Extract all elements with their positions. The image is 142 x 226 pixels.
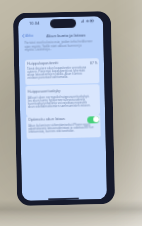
button[interactable]	[26, 114, 101, 139]
staticText: Huippukapasiteetti	[27, 60, 59, 66]
staticText: aikaa latauskertojen välillä. Akun kunto…	[27, 72, 82, 77]
staticText: 10.04	[29, 20, 40, 26]
staticText: päivittäisestä latausrutiinistasi ja odo…	[28, 125, 94, 131]
staticText: Akkusi tukee normaalia huippusuorituskyk…	[28, 94, 90, 100]
staticText: Akku	[25, 33, 33, 38]
staticText: Tämä ilmaisee akun kapasiteetin verrattu…	[27, 65, 87, 71]
staticText: uuteen. Pienempi kapasiteetti voi lyhent…	[27, 68, 85, 74]
staticText: Optimoitu akun lataus	[28, 116, 65, 122]
staticText: suorituskyvynhallinta voi rajoittaa nope…	[28, 100, 87, 106]
staticText: ajan myötä. Täällä näet akkusi kunnon ja	[24, 44, 82, 49]
button[interactable]: Akku	[22, 32, 33, 39]
staticText: Jos akun kunto heikkenee tulevaisuudessa…	[28, 97, 87, 103]
button[interactable]: Optimoitu akun lataus	[87, 116, 99, 123]
staticText: Akun kulumisen vähentämiseksi iPhone opp…	[28, 122, 90, 128]
staticText: myötä. Lisätietoja…	[25, 47, 53, 52]
staticText: akun odottamattomien sammumisten estoon.	[28, 103, 91, 109]
staticText: Akun kunto ja lataus	[46, 32, 86, 38]
button[interactable]	[25, 84, 100, 116]
staticText: voidaan parantaa vaihtamalla.	[27, 75, 69, 80]
staticText: Paristot ovat kuluvia osia, joiden teho …	[24, 39, 93, 45]
button[interactable]	[25, 58, 99, 85]
staticText: 87 %	[90, 60, 98, 64]
staticText: Huippusuorituskyky	[27, 88, 61, 94]
staticText: ohittamista, kunnes sitä tarvitaan.	[28, 129, 76, 134]
